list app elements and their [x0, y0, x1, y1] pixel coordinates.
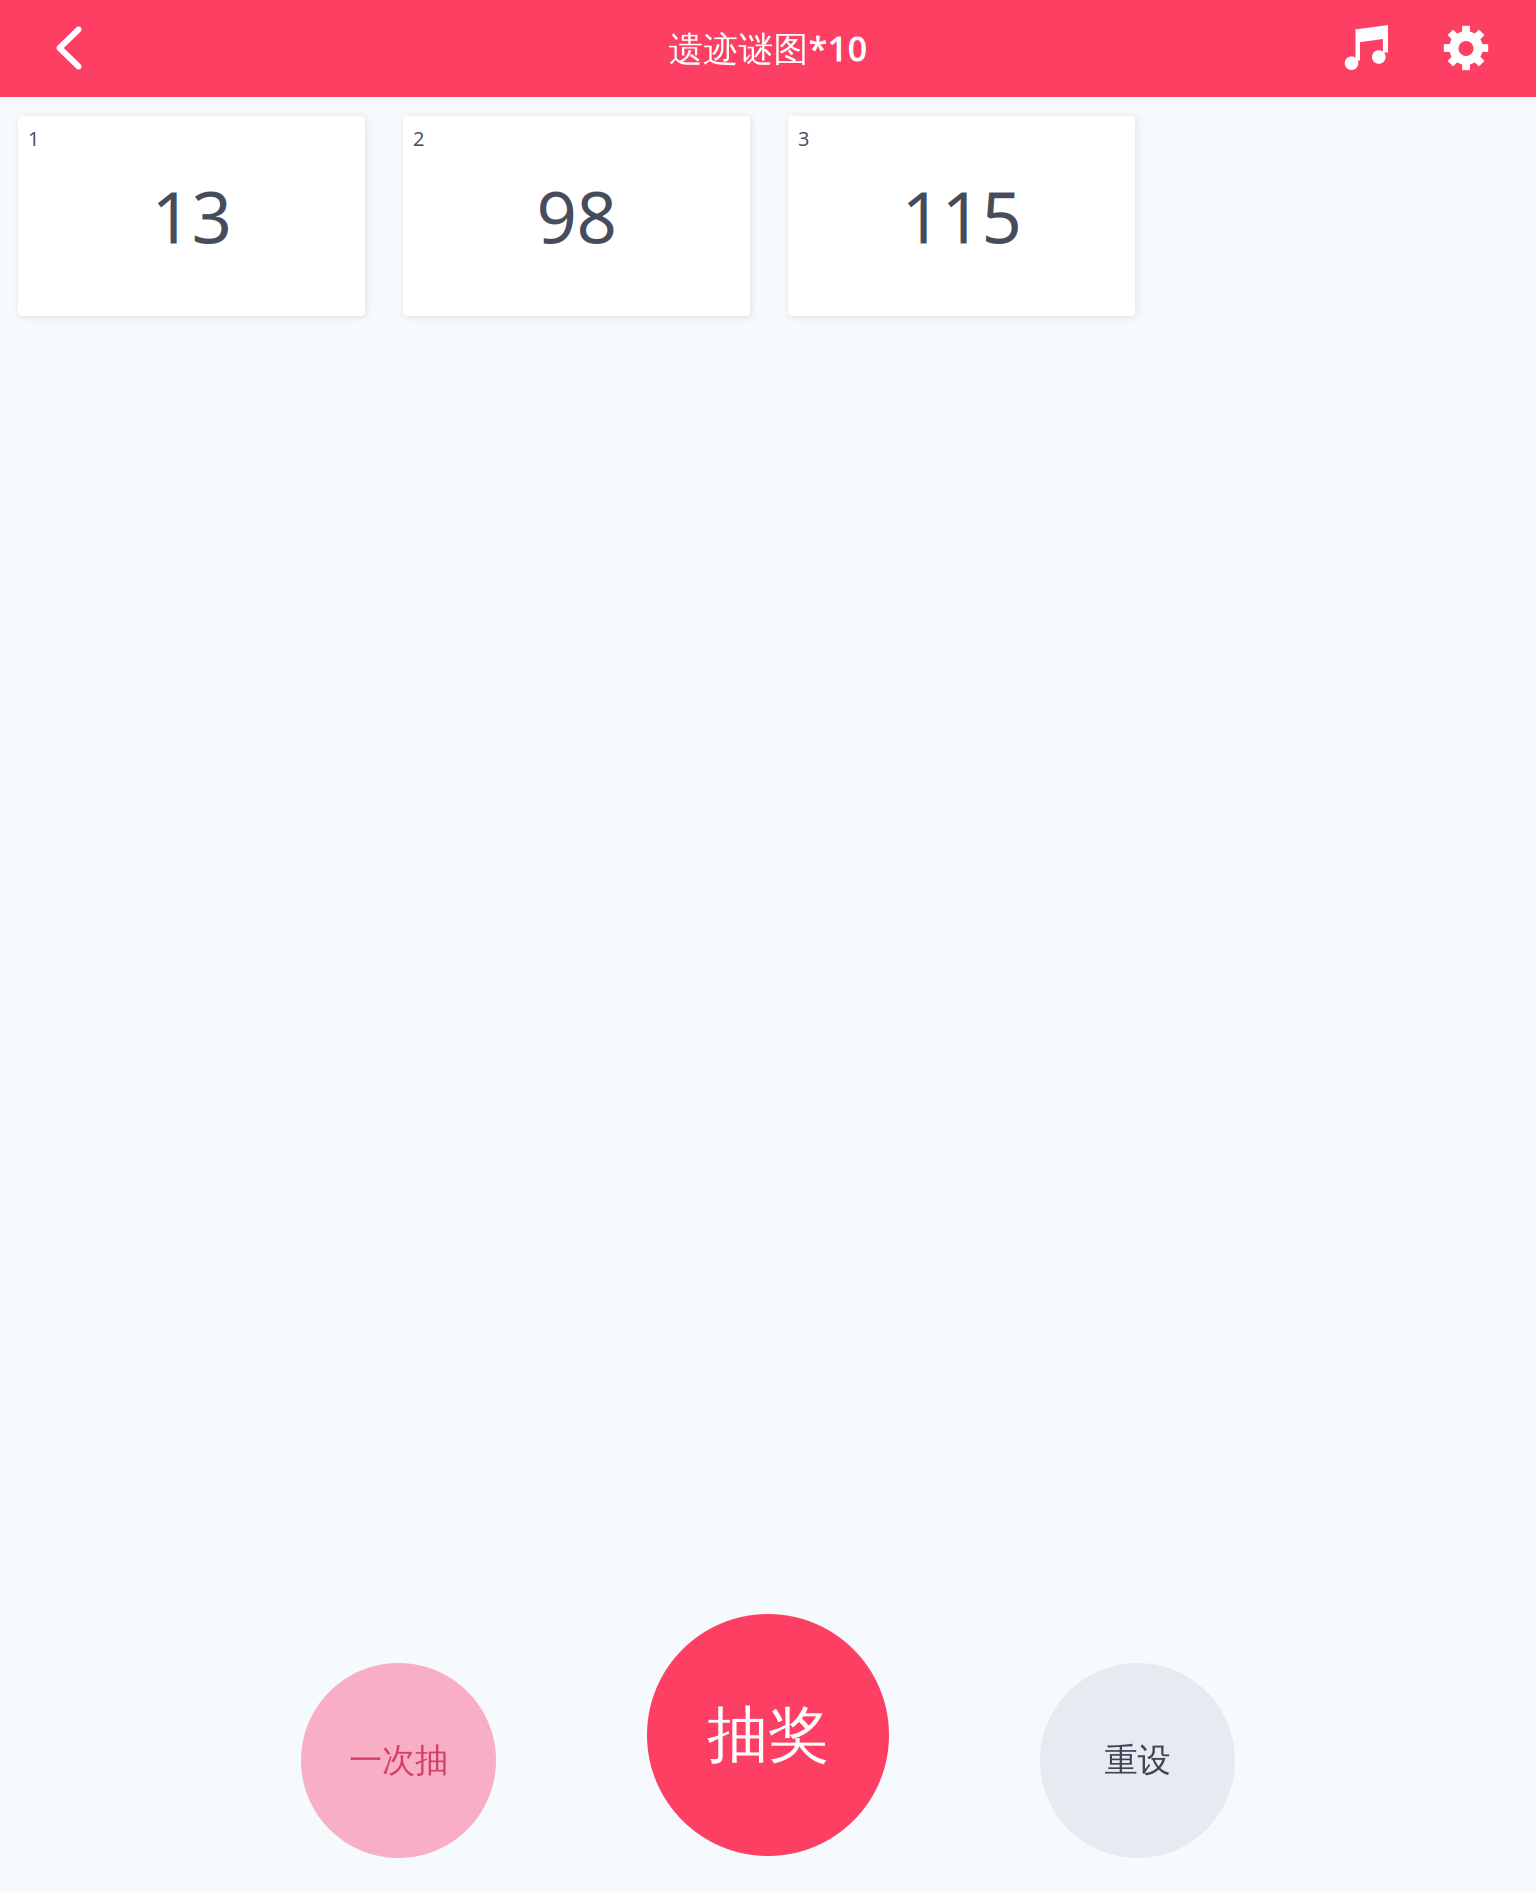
- button[interactable]: Music: [1323, 5, 1409, 91]
- staticText: 3: [798, 125, 809, 152]
- staticText: 重设: [1104, 1740, 1170, 1781]
- staticText: 115: [901, 169, 1021, 263]
- staticText: 1: [28, 125, 39, 152]
- staticText: 一次抽: [349, 1740, 448, 1781]
- button[interactable]: 抽奖: [647, 1614, 889, 1856]
- staticText: 2: [413, 125, 424, 152]
- button[interactable]: Back: [26, 5, 112, 91]
- button[interactable]: 一次抽: [301, 1663, 496, 1858]
- staticText: 抽奖: [707, 1697, 829, 1773]
- button[interactable]: Settings: [1423, 5, 1509, 91]
- staticText: 遗迹谜图*10: [668, 25, 867, 71]
- staticText: 98: [536, 169, 616, 263]
- button[interactable]: 重设: [1040, 1663, 1235, 1858]
- staticText: 13: [151, 169, 231, 263]
